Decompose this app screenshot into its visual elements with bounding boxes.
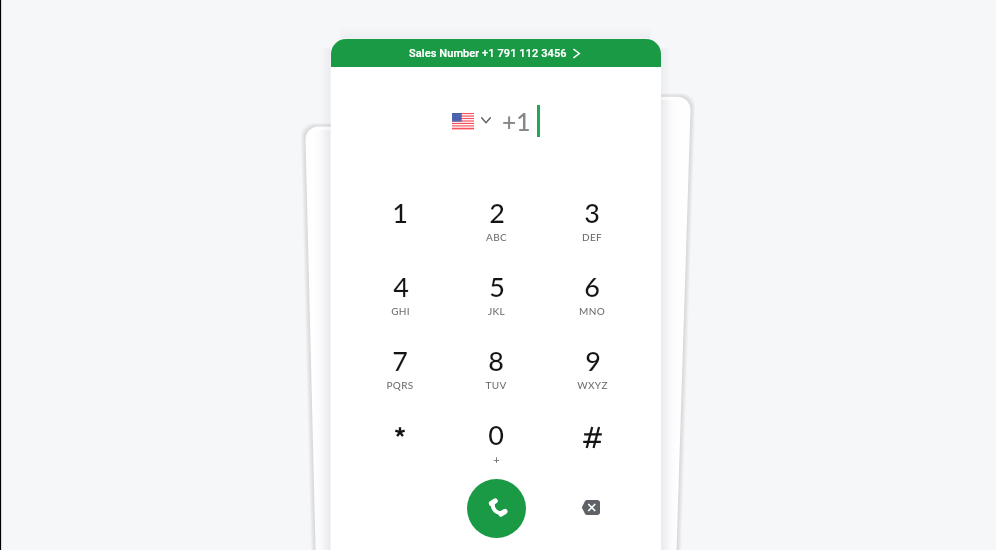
- button[interactable]: 4: [364, 265, 436, 325]
- button[interactable]: 9: [556, 339, 628, 399]
- staticText: PQRS: [386, 379, 414, 391]
- staticText: 2: [489, 196, 505, 228]
- button[interactable]: 8: [460, 339, 532, 399]
- button[interactable]: Sales Number +1 791 112 3456: [331, 39, 661, 67]
- staticText: 1: [392, 196, 408, 228]
- button[interactable]: Call: [467, 479, 526, 538]
- button[interactable]: 1: [364, 191, 436, 251]
- staticText: 3: [584, 196, 600, 228]
- staticText: +1: [502, 107, 531, 136]
- staticText: 5: [489, 270, 505, 302]
- staticText: 6: [584, 270, 600, 302]
- button[interactable]: 0: [460, 413, 532, 473]
- button[interactable]: Backspace: [576, 496, 604, 518]
- button[interactable]: 7: [364, 339, 436, 399]
- staticText: 8: [488, 344, 504, 376]
- staticText: JKL: [488, 305, 505, 317]
- button[interactable]: [364, 413, 436, 473]
- staticText: 4: [393, 270, 409, 302]
- staticText: +: [493, 453, 500, 466]
- staticText: DEF: [582, 231, 602, 243]
- staticText: Sales Number +1 791 112 3456: [409, 47, 567, 60]
- button[interactable]: [556, 413, 628, 473]
- button[interactable]: 6: [556, 265, 628, 325]
- staticText: ABC: [486, 231, 507, 243]
- button[interactable]: 5: [460, 265, 532, 325]
- staticText: WXYZ: [577, 379, 608, 391]
- staticText: 0: [488, 418, 504, 450]
- staticText: 9: [585, 344, 601, 376]
- staticText: GHI: [391, 305, 410, 317]
- button[interactable]: 3: [556, 191, 628, 251]
- staticText: MNO: [579, 305, 605, 317]
- button[interactable]: 2: [460, 191, 532, 251]
- staticText: 7: [392, 344, 408, 376]
- button[interactable]: Select country code: [452, 113, 491, 129]
- staticText: TUV: [485, 379, 507, 391]
